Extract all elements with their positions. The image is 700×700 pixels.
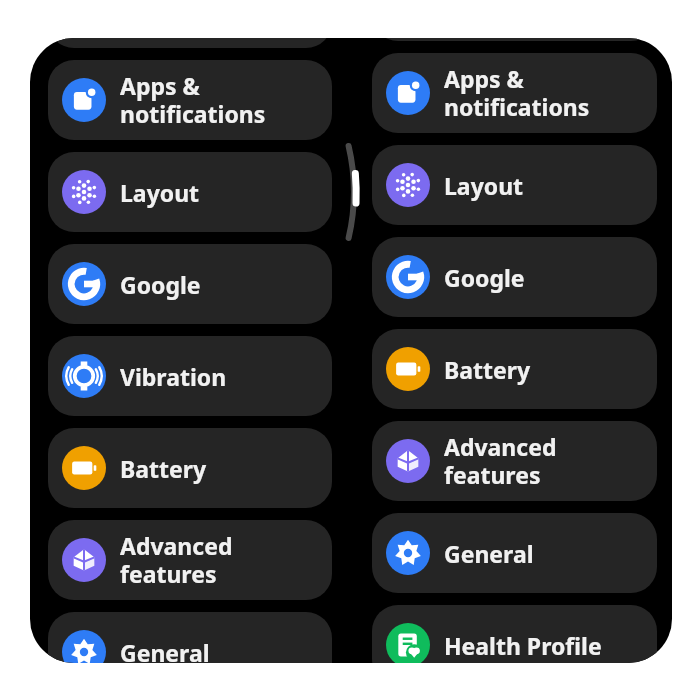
button[interactable]: LAYOUT xyxy=(372,145,657,225)
staticText: Battery xyxy=(120,453,326,484)
other: LAYOUT xyxy=(386,163,430,207)
staticText: Health Profile xyxy=(444,630,651,661)
other: APPS xyxy=(386,71,430,115)
other: BATTERY xyxy=(386,347,430,391)
other: GEAR xyxy=(386,531,430,575)
staticText: Google xyxy=(120,269,326,300)
other: VIBRATION xyxy=(62,354,106,398)
other: GOOGLE xyxy=(386,255,430,299)
other: GEAR xyxy=(62,630,106,663)
button[interactable]: CUBE xyxy=(372,421,657,501)
button[interactable]: GEAR xyxy=(48,612,332,663)
staticText: Apps & notifications xyxy=(444,63,651,123)
staticText: Google xyxy=(444,262,651,293)
staticText: Vibration xyxy=(120,361,326,392)
button[interactable]: BATTERY xyxy=(48,428,332,508)
button[interactable]: GEAR xyxy=(48,38,332,48)
other: GOOGLE xyxy=(62,262,106,306)
staticText: Advanced features xyxy=(120,530,326,590)
button[interactable]: GOOGLE xyxy=(48,244,332,324)
staticText: Layout xyxy=(444,170,651,201)
other: BATTERY xyxy=(62,446,106,490)
button[interactable]: GEAR xyxy=(372,513,657,593)
other: HEALTH xyxy=(386,623,430,663)
button[interactable]: CUBE xyxy=(48,520,332,600)
button[interactable]: BATTERY xyxy=(372,329,657,409)
staticText: Advanced features xyxy=(444,431,651,491)
button[interactable]: APPS xyxy=(48,60,332,140)
button[interactable]: GOOGLE xyxy=(372,237,657,317)
staticText: Battery xyxy=(444,354,651,385)
staticText: General xyxy=(444,538,651,569)
button[interactable]: VIBRATION xyxy=(48,336,332,416)
other: CUBE xyxy=(62,538,106,582)
button[interactable]: HEALTH xyxy=(372,605,657,663)
staticText: Apps & notifications xyxy=(120,70,326,130)
button[interactable]: LAYOUT xyxy=(48,152,332,232)
other: CUBE xyxy=(386,439,430,483)
other: LAYOUT xyxy=(62,170,106,214)
staticText: Layout xyxy=(120,177,326,208)
staticText: General xyxy=(120,637,326,663)
button[interactable]: GEAR xyxy=(372,38,657,41)
other: APPS xyxy=(62,78,106,122)
button[interactable]: APPS xyxy=(372,53,657,133)
